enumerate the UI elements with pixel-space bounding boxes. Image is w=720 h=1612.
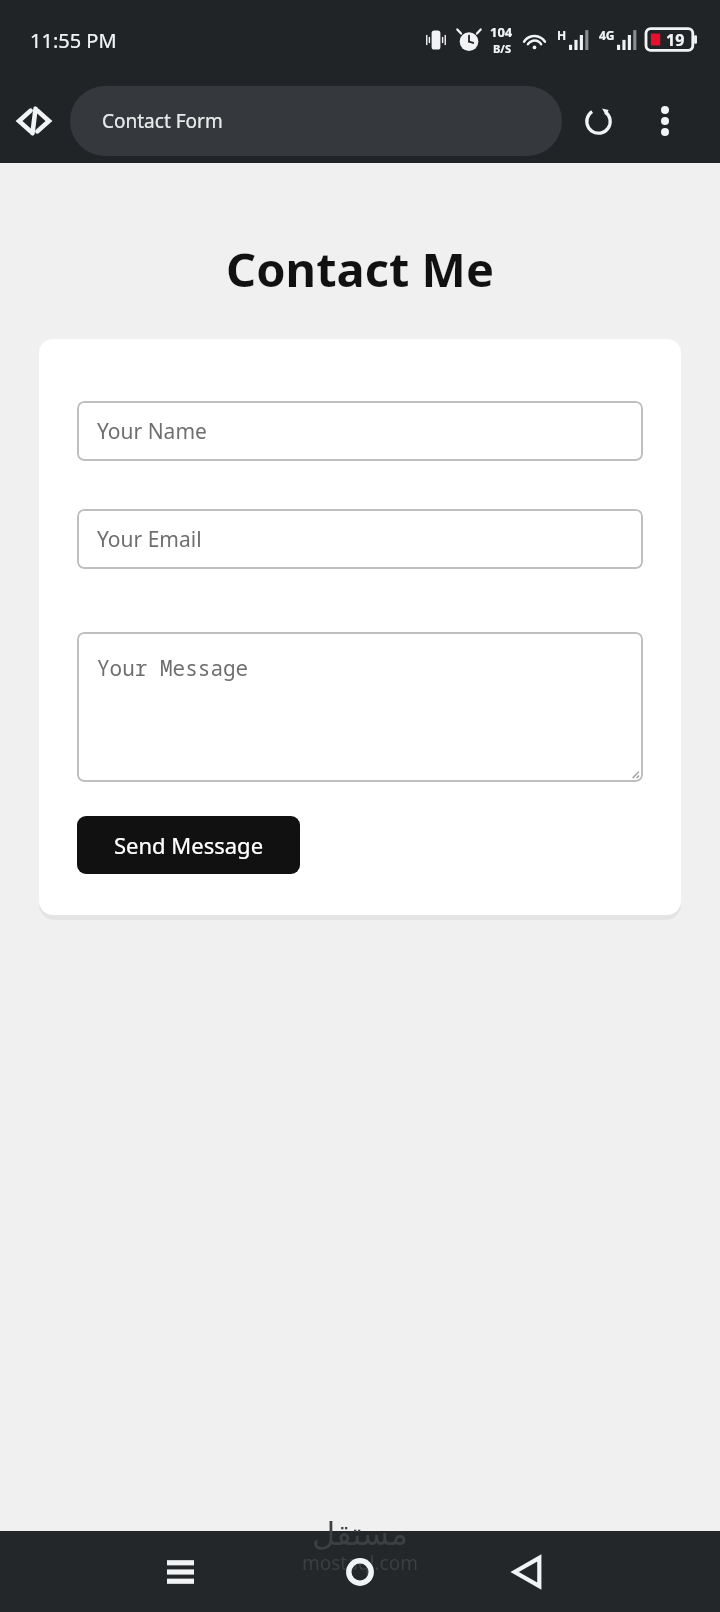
button[interactable]: More options	[639, 95, 691, 147]
button[interactable]: Your Name	[77, 401, 643, 461]
staticText: mostaql.com	[302, 1550, 418, 1576]
staticText: Your Email	[97, 525, 202, 554]
button[interactable]: Recent apps	[140, 1532, 220, 1612]
button[interactable]: Developer tools	[8, 95, 60, 147]
staticText: 19	[666, 29, 685, 51]
button[interactable]: Your Message	[77, 632, 643, 782]
staticText: 11:55 PM	[30, 27, 117, 54]
button[interactable]: Reload	[572, 95, 624, 147]
staticText: 4G	[599, 27, 615, 43]
button[interactable]: Your Email	[77, 509, 643, 569]
button[interactable]: Home	[320, 1532, 400, 1612]
staticText: Contact Form	[102, 108, 223, 134]
button[interactable]: Back	[487, 1532, 567, 1612]
staticText: Contact Me	[0, 237, 720, 301]
button[interactable]: Contact Form	[70, 86, 562, 156]
staticText: Your Name	[97, 417, 207, 446]
staticText: Your Message	[97, 654, 249, 683]
staticText: Send Message	[114, 830, 264, 860]
button[interactable]: Send Message	[77, 816, 300, 874]
staticText: 104	[490, 23, 513, 41]
staticText: H	[557, 27, 567, 43]
staticText: مستقل	[312, 1515, 408, 1552]
staticText: B/S	[493, 41, 511, 56]
